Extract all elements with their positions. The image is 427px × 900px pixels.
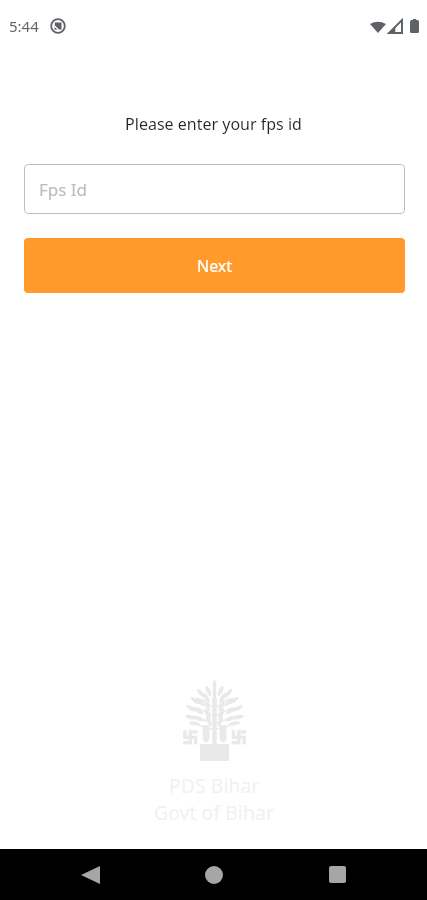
staticText: Fps Id <box>39 178 88 201</box>
staticText: PDS Bihar <box>169 772 260 799</box>
button[interactable]: Back <box>51 849 129 900</box>
button[interactable]: Fps Id <box>24 164 405 214</box>
staticText: Next <box>197 255 233 277</box>
button[interactable]: Home <box>175 849 253 900</box>
button[interactable]: Next <box>24 238 405 293</box>
staticText: Govt of Bihar <box>154 799 274 826</box>
button[interactable]: Recent apps <box>298 849 376 900</box>
staticText: 5:44 <box>9 16 39 36</box>
staticText: Please enter your fps id <box>0 113 427 135</box>
